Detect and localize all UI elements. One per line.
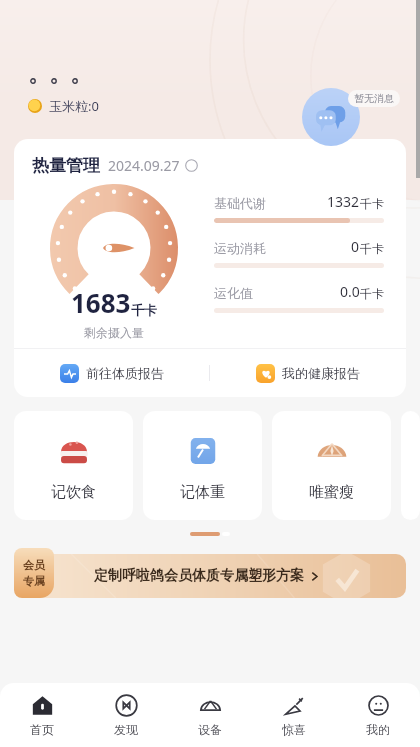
staticText: 记饮食 bbox=[51, 483, 96, 502]
staticText: 运化值 bbox=[214, 285, 253, 301]
button[interactable]: Messages bbox=[302, 88, 360, 146]
staticText: 首页 bbox=[30, 722, 54, 737]
button[interactable]: 发现 bbox=[84, 683, 168, 747]
button[interactable]: 热量管理 bbox=[32, 155, 198, 176]
staticText: 千卡 bbox=[360, 286, 384, 301]
staticText: 热量管理 bbox=[32, 155, 100, 176]
staticText: 0 bbox=[351, 237, 360, 256]
staticText: 惊喜 bbox=[282, 722, 306, 737]
staticText: 定制呼啦鸽会员体质专属塑形方案 bbox=[94, 567, 304, 585]
staticText: 剩余摄入量 bbox=[84, 325, 144, 340]
staticText: 专属 bbox=[23, 574, 45, 588]
button[interactable]: 定制呼啦鸽会员体质专属塑形方案 bbox=[34, 554, 406, 598]
staticText: 千卡 bbox=[131, 302, 157, 318]
staticText: 2024.09.27 bbox=[108, 156, 180, 175]
button[interactable]: 惊喜 bbox=[252, 683, 336, 747]
button[interactable]: 首页 bbox=[0, 683, 84, 747]
staticText: 玉米粒:0 bbox=[49, 97, 99, 115]
button[interactable]: 前往体质报告 bbox=[14, 349, 209, 397]
staticText: 我的健康报告 bbox=[282, 365, 360, 381]
staticText: 设备 bbox=[198, 722, 222, 737]
button[interactable]: 玉米粒:0 bbox=[28, 97, 99, 115]
staticText: 千卡 bbox=[360, 241, 384, 256]
staticText: 0.0 bbox=[340, 282, 360, 301]
button[interactable]: 记饮食 bbox=[14, 411, 133, 520]
staticText: 唯蜜瘦 bbox=[309, 483, 354, 502]
staticText: 发现 bbox=[114, 722, 138, 737]
button[interactable]: 我的健康报告 bbox=[210, 349, 406, 397]
button[interactable]: 唯蜜瘦 bbox=[272, 411, 391, 520]
staticText: 我的 bbox=[366, 722, 390, 737]
button[interactable]: 记体重 bbox=[143, 411, 262, 520]
staticText: 运动消耗 bbox=[214, 240, 266, 256]
button[interactable]: 设备 bbox=[168, 683, 252, 747]
staticText: 1683 bbox=[71, 285, 131, 320]
staticText: 千卡 bbox=[360, 196, 384, 211]
staticText: 会员 bbox=[23, 558, 45, 572]
button[interactable]: 我的 bbox=[336, 683, 420, 747]
staticText: 基础代谢 bbox=[214, 195, 266, 211]
staticText: 暂无消息 bbox=[354, 92, 394, 105]
staticText: 记体重 bbox=[180, 483, 225, 502]
staticText: 1332 bbox=[327, 192, 360, 211]
staticText: 前往体质报告 bbox=[86, 365, 164, 381]
